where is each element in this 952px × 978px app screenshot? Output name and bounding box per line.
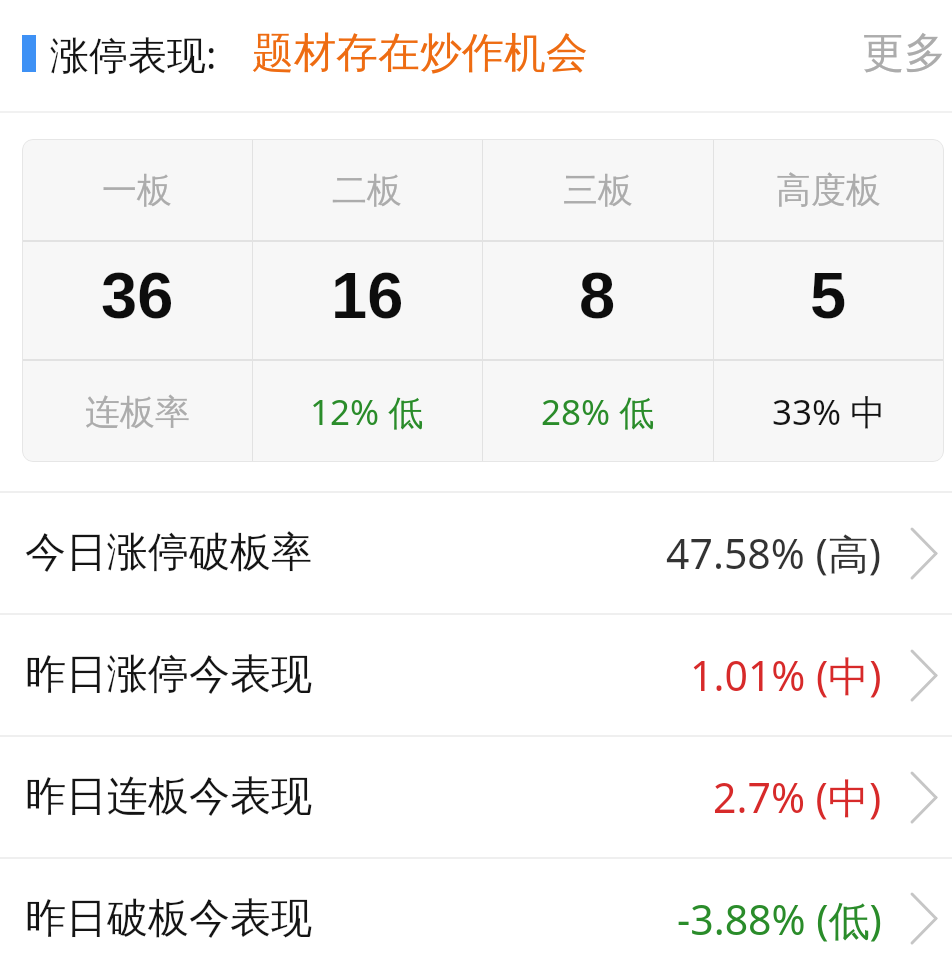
staticText: 33% 中 [772, 388, 886, 436]
staticText: 更多 [862, 27, 946, 80]
button[interactable]: 33% 中 [713, 361, 944, 462]
button[interactable]: 12% 低 [252, 361, 482, 462]
button[interactable]: 昨日涨停今表现 [0, 615, 952, 735]
staticText: 8 [579, 259, 616, 332]
button[interactable]: 二板 [252, 139, 482, 240]
button[interactable]: 28% 低 [482, 361, 713, 462]
button[interactable]: 16 [252, 242, 482, 359]
other: 查看详情 [912, 894, 936, 943]
staticText: 昨日涨停今表现 [25, 649, 312, 701]
staticText: 47.58% (高) [666, 525, 882, 581]
staticText: 2.7% (中) [713, 769, 882, 825]
button[interactable]: 今日涨停破板率 [0, 493, 952, 613]
button[interactable]: 更多 [848, 17, 952, 90]
staticText: 高度板 [776, 168, 881, 212]
staticText: 一板 [102, 168, 172, 212]
staticText: 16 [331, 259, 404, 332]
other: 查看详情 [912, 651, 936, 700]
staticText: 28% 低 [541, 388, 655, 436]
button[interactable]: 高度板 [713, 139, 944, 240]
staticText: 12% 低 [310, 388, 424, 436]
button[interactable]: 36 [22, 242, 252, 359]
other: 查看详情 [912, 529, 936, 578]
staticText: 涨停表现: [50, 27, 217, 80]
staticText: 今日涨停破板率 [25, 527, 312, 579]
staticText: 昨日连板今表现 [25, 771, 312, 823]
button[interactable]: 连板率 [22, 361, 252, 462]
staticText: -3.88% (低) [677, 891, 882, 947]
button[interactable]: 5 [713, 242, 944, 359]
button[interactable]: 一板 [22, 139, 252, 240]
staticText: 三板 [563, 168, 633, 212]
button[interactable]: 三板 [482, 139, 713, 240]
button[interactable]: 昨日破板今表现 [0, 859, 952, 978]
staticText: 1.01% (中) [690, 647, 882, 703]
staticText: 昨日破板今表现 [25, 893, 312, 945]
staticText: 36 [101, 259, 174, 332]
staticText: 二板 [332, 168, 402, 212]
other: 查看详情 [912, 773, 936, 822]
staticText: 题材存在炒作机会 [252, 27, 588, 80]
staticText: 5 [810, 259, 847, 332]
staticText: 连板率 [85, 390, 190, 434]
button[interactable]: 8 [482, 242, 713, 359]
button[interactable]: 昨日连板今表现 [0, 737, 952, 857]
